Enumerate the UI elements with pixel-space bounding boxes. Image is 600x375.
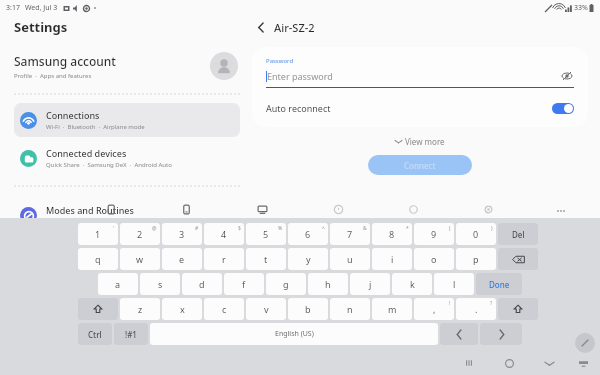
button[interactable]: a <box>98 273 138 295</box>
staticText: Samsung account <box>14 53 116 69</box>
button[interactable]: Recents <box>460 354 478 372</box>
button[interactable]: Hide keyboard <box>574 354 592 372</box>
staticText: ? <box>490 300 493 307</box>
button[interactable] <box>440 323 478 345</box>
button[interactable]: 4 <box>204 223 244 245</box>
button[interactable]: z <box>120 298 160 320</box>
button[interactable]: w <box>120 248 160 270</box>
button[interactable]: App 5 <box>481 202 495 216</box>
button[interactable]: 7 <box>330 223 370 245</box>
staticText: r <box>222 253 226 265</box>
button[interactable]: c <box>204 298 244 320</box>
staticText: n <box>347 303 353 315</box>
button[interactable]: Home <box>500 354 518 372</box>
button[interactable]: p <box>456 248 496 270</box>
button[interactable]: k <box>392 273 432 295</box>
button[interactable]: Connections <box>14 103 240 137</box>
staticText: m <box>388 303 397 315</box>
button[interactable]: i <box>372 248 412 270</box>
staticText: Modes · Routines <box>46 218 98 226</box>
button[interactable]: m <box>372 298 412 320</box>
staticText: Quick Share · Samsung DeX · Android Auto <box>46 161 172 169</box>
staticText: i <box>391 253 394 265</box>
staticText: # <box>195 225 199 232</box>
button[interactable]: q <box>78 248 118 270</box>
button[interactable] <box>498 248 538 270</box>
button[interactable]: Samsung account <box>14 52 238 80</box>
button[interactable]: 9 <box>414 223 454 245</box>
button[interactable]: . <box>456 298 496 320</box>
button[interactable]: View more <box>395 136 445 147</box>
button[interactable]: d <box>182 273 222 295</box>
staticText: l <box>453 278 456 290</box>
staticText: Del <box>512 229 525 240</box>
button[interactable]: 8 <box>372 223 412 245</box>
button[interactable]: 1 <box>78 223 118 245</box>
staticText: s <box>158 278 163 290</box>
staticText: ^ <box>322 225 325 232</box>
button[interactable]: o <box>414 248 454 270</box>
button[interactable]: , <box>414 298 454 320</box>
button[interactable]: More apps <box>555 205 567 217</box>
button[interactable] <box>78 298 118 320</box>
staticText: 3 <box>179 228 185 240</box>
button[interactable] <box>480 323 522 345</box>
button[interactable]: n <box>330 298 370 320</box>
button[interactable]: b <box>288 298 328 320</box>
button[interactable]: x <box>162 298 202 320</box>
button[interactable]: s <box>140 273 180 295</box>
staticText: e <box>179 253 185 265</box>
button[interactable]: f <box>224 273 264 295</box>
button[interactable]: App 2 <box>255 202 269 216</box>
button[interactable]: !#1 <box>114 323 148 345</box>
button[interactable]: Back <box>540 354 558 372</box>
staticText: p <box>473 253 479 265</box>
button[interactable]: Del <box>498 223 538 245</box>
staticText: y <box>306 253 311 265</box>
button[interactable]: Connected devices <box>14 141 240 175</box>
button[interactable]: Auto reconnect <box>266 102 574 114</box>
button[interactable]: l <box>434 273 474 295</box>
button[interactable]: Done <box>476 273 522 295</box>
button[interactable]: Back <box>252 18 270 36</box>
button[interactable]: 5 <box>246 223 286 245</box>
staticText: 5 <box>263 228 269 240</box>
button[interactable]: Show password <box>560 69 574 83</box>
button[interactable]: v <box>246 298 286 320</box>
staticText: 3:17 <box>6 3 20 13</box>
staticText: Profile · Apps and features <box>14 72 92 80</box>
button[interactable]: y <box>288 248 328 270</box>
button[interactable]: Stylus <box>575 333 595 353</box>
button[interactable]: Modes and Routines <box>14 198 240 232</box>
staticText: h <box>325 278 331 290</box>
button[interactable]: English (US) <box>150 323 438 345</box>
staticText: w <box>136 253 144 265</box>
button[interactable]: App 3 <box>331 202 345 216</box>
staticText: Connected devices <box>46 147 127 159</box>
button[interactable]: t <box>246 248 286 270</box>
staticText: Wi-Fi · Bluetooth · Airplane mode <box>46 123 145 131</box>
button[interactable]: 0 <box>456 223 496 245</box>
button[interactable]: 3 <box>162 223 202 245</box>
button[interactable] <box>498 298 538 320</box>
button[interactable]: App 1 <box>179 202 193 216</box>
button[interactable]: g <box>266 273 306 295</box>
staticText: Air-SZ-2 <box>274 20 315 35</box>
staticText: !#1 <box>125 329 137 340</box>
button[interactable]: App 4 <box>406 202 420 216</box>
button[interactable]: Ctrl <box>78 323 112 345</box>
staticText: ( <box>449 225 451 232</box>
button[interactable]: u <box>330 248 370 270</box>
staticText: @ <box>152 225 157 232</box>
button[interactable]: Connect <box>368 155 472 175</box>
button[interactable]: 6 <box>288 223 328 245</box>
button[interactable]: e <box>162 248 202 270</box>
staticText: Done <box>489 279 510 290</box>
button[interactable]: r <box>204 248 244 270</box>
button[interactable]: App 0 <box>104 202 118 216</box>
staticText: Settings <box>14 18 68 36</box>
staticText: x <box>180 303 185 315</box>
button[interactable]: j <box>350 273 390 295</box>
button[interactable]: 2 <box>120 223 160 245</box>
button[interactable]: h <box>308 273 348 295</box>
